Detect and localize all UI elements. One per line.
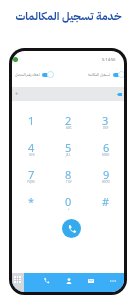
button[interactable]: * [12,194,50,221]
staticText: MNO [102,153,110,157]
button[interactable]: 1 [12,113,50,140]
staticText: 3 [102,113,109,128]
button[interactable]: 3 [87,113,124,140]
staticText: ABC [66,126,72,130]
staticText: 4 [28,140,35,155]
staticText: + [15,90,19,98]
button[interactable]: 7 [12,167,50,194]
staticText: # [102,194,110,209]
button[interactable]: 0 [50,194,87,221]
staticText: 1 [28,113,35,128]
staticText: خدمة تسجيل المكالمات [15,8,122,25]
button[interactable]: More [102,273,124,292]
button[interactable]: Backspace [117,93,122,96]
staticText: 7 [28,167,35,182]
button[interactable]: Messages [80,273,102,292]
button[interactable]: Contacts [58,273,80,292]
button[interactable]: + [12,87,124,101]
button[interactable]: 2 [50,113,87,140]
button[interactable]: # [87,194,124,221]
button[interactable]: Call [62,219,81,238]
staticText: 2 [65,113,72,128]
staticText: 5 [65,140,72,155]
button[interactable]: 5 [50,140,87,167]
staticText: PQRS [27,180,35,184]
staticText: تسجيل المكالمة [88,72,111,78]
staticText: اخفاء رقم المتصل [15,72,40,78]
staticText: WXYZ [102,180,110,184]
staticText: 6 [103,140,110,155]
staticText: + [68,207,70,211]
staticText: 0 [65,194,72,209]
button[interactable]: 4 [12,140,50,167]
button[interactable]: Dialpad [12,273,35,292]
button[interactable]: تسجيل المكالمة [88,71,124,78]
button[interactable]: 6 [87,140,124,167]
staticText: GHI [29,153,35,157]
staticText: 5:14:56 [102,57,116,62]
staticText: JKL [66,153,71,157]
staticText: * [28,194,35,209]
button[interactable]: Call [35,273,58,292]
staticText: 8 [65,167,72,182]
button[interactable]: 8 [50,167,87,194]
button[interactable]: اخفاء رقم المتصل [15,71,54,78]
staticText: TUV [66,180,72,184]
staticText: DEF [103,126,109,130]
staticText: 9 [103,167,110,182]
button[interactable]: 9 [87,167,124,194]
